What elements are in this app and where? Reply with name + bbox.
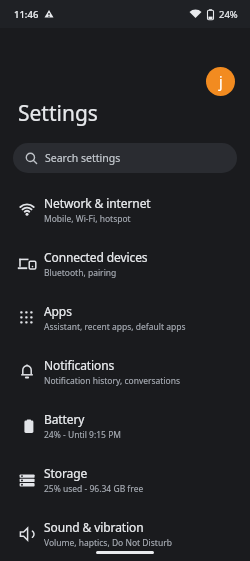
button[interactable]: Notifications (0, 345, 250, 399)
button[interactable]: Search settings (13, 143, 237, 173)
staticText: Sound & vibration (44, 519, 144, 535)
staticText: 11:46 (14, 8, 39, 21)
button[interactable]: Network & internet (0, 183, 250, 237)
staticText: Assistant, recent apps, default apps (44, 321, 186, 333)
staticText: Notifications (44, 357, 115, 373)
staticText: Apps (44, 303, 72, 319)
staticText: j (219, 72, 223, 91)
staticText: 24% (219, 8, 238, 21)
button[interactable]: Apps (0, 291, 250, 345)
staticText: Notification history, conversations (44, 375, 181, 387)
staticText: 25% used - 96.34 GB free (44, 483, 144, 495)
button[interactable]: Battery (0, 399, 250, 453)
staticText: Battery (44, 411, 85, 427)
button[interactable]: j (206, 67, 235, 96)
staticText: Bluetooth, pairing (44, 267, 117, 279)
staticText: Connected devices (44, 249, 148, 265)
staticText: Network & internet (44, 195, 151, 211)
staticText: Search settings (45, 151, 121, 165)
staticText: 24% - Until 9:15 PM (44, 429, 122, 441)
button[interactable]: Storage (0, 453, 250, 507)
staticText: Storage (44, 465, 88, 481)
staticText: Settings (18, 99, 98, 128)
staticText: Mobile, Wi-Fi, hotspot (44, 213, 131, 225)
button[interactable]: Connected devices (0, 237, 250, 291)
button[interactable]: Sound & vibration (0, 507, 250, 561)
staticText: Volume, haptics, Do Not Disturb (44, 537, 172, 549)
